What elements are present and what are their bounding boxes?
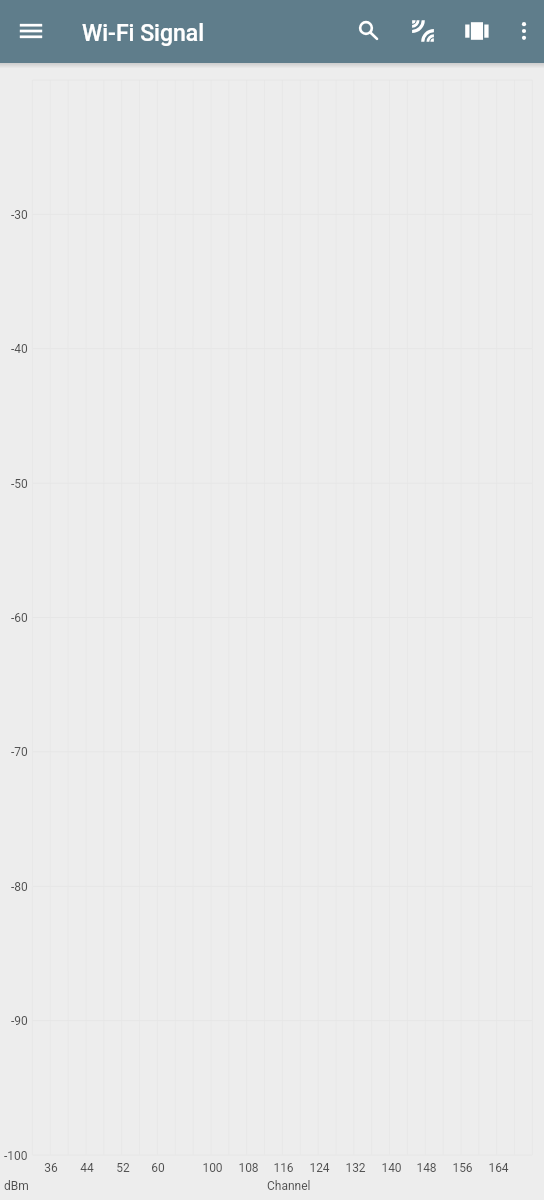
staticText: 36 — [44, 1161, 58, 1175]
staticText: 148 — [416, 1161, 437, 1175]
staticText: 156 — [452, 1161, 473, 1175]
button[interactable]: Vibrate — [455, 9, 499, 53]
button[interactable]: Open navigation drawer — [9, 9, 53, 53]
staticText: 132 — [345, 1161, 366, 1175]
button[interactable]: More options — [502, 9, 544, 53]
button[interactable]: Wi-Fi access points — [401, 9, 445, 53]
staticText: 60 — [151, 1161, 165, 1175]
staticText: dBm — [4, 1179, 29, 1193]
staticText: Channel — [267, 1179, 311, 1193]
staticText: 108 — [238, 1161, 259, 1175]
staticText: -90 — [11, 1014, 28, 1028]
staticText: -30 — [11, 208, 28, 222]
staticText: -50 — [11, 477, 28, 491]
staticText: 100 — [202, 1161, 223, 1175]
staticText: 164 — [488, 1161, 509, 1175]
staticText: -80 — [11, 880, 28, 894]
staticText: 116 — [273, 1161, 294, 1175]
button[interactable]: Search — [344, 6, 388, 50]
staticText: 52 — [116, 1161, 130, 1175]
staticText: Wi-Fi Signal — [82, 20, 205, 47]
staticText: 44 — [80, 1161, 94, 1175]
staticText: 124 — [309, 1161, 330, 1175]
staticText: -40 — [11, 342, 28, 356]
staticText: -60 — [11, 611, 28, 625]
staticText: -100 — [4, 1149, 28, 1163]
staticText: -70 — [11, 745, 28, 759]
staticText: 140 — [381, 1161, 402, 1175]
